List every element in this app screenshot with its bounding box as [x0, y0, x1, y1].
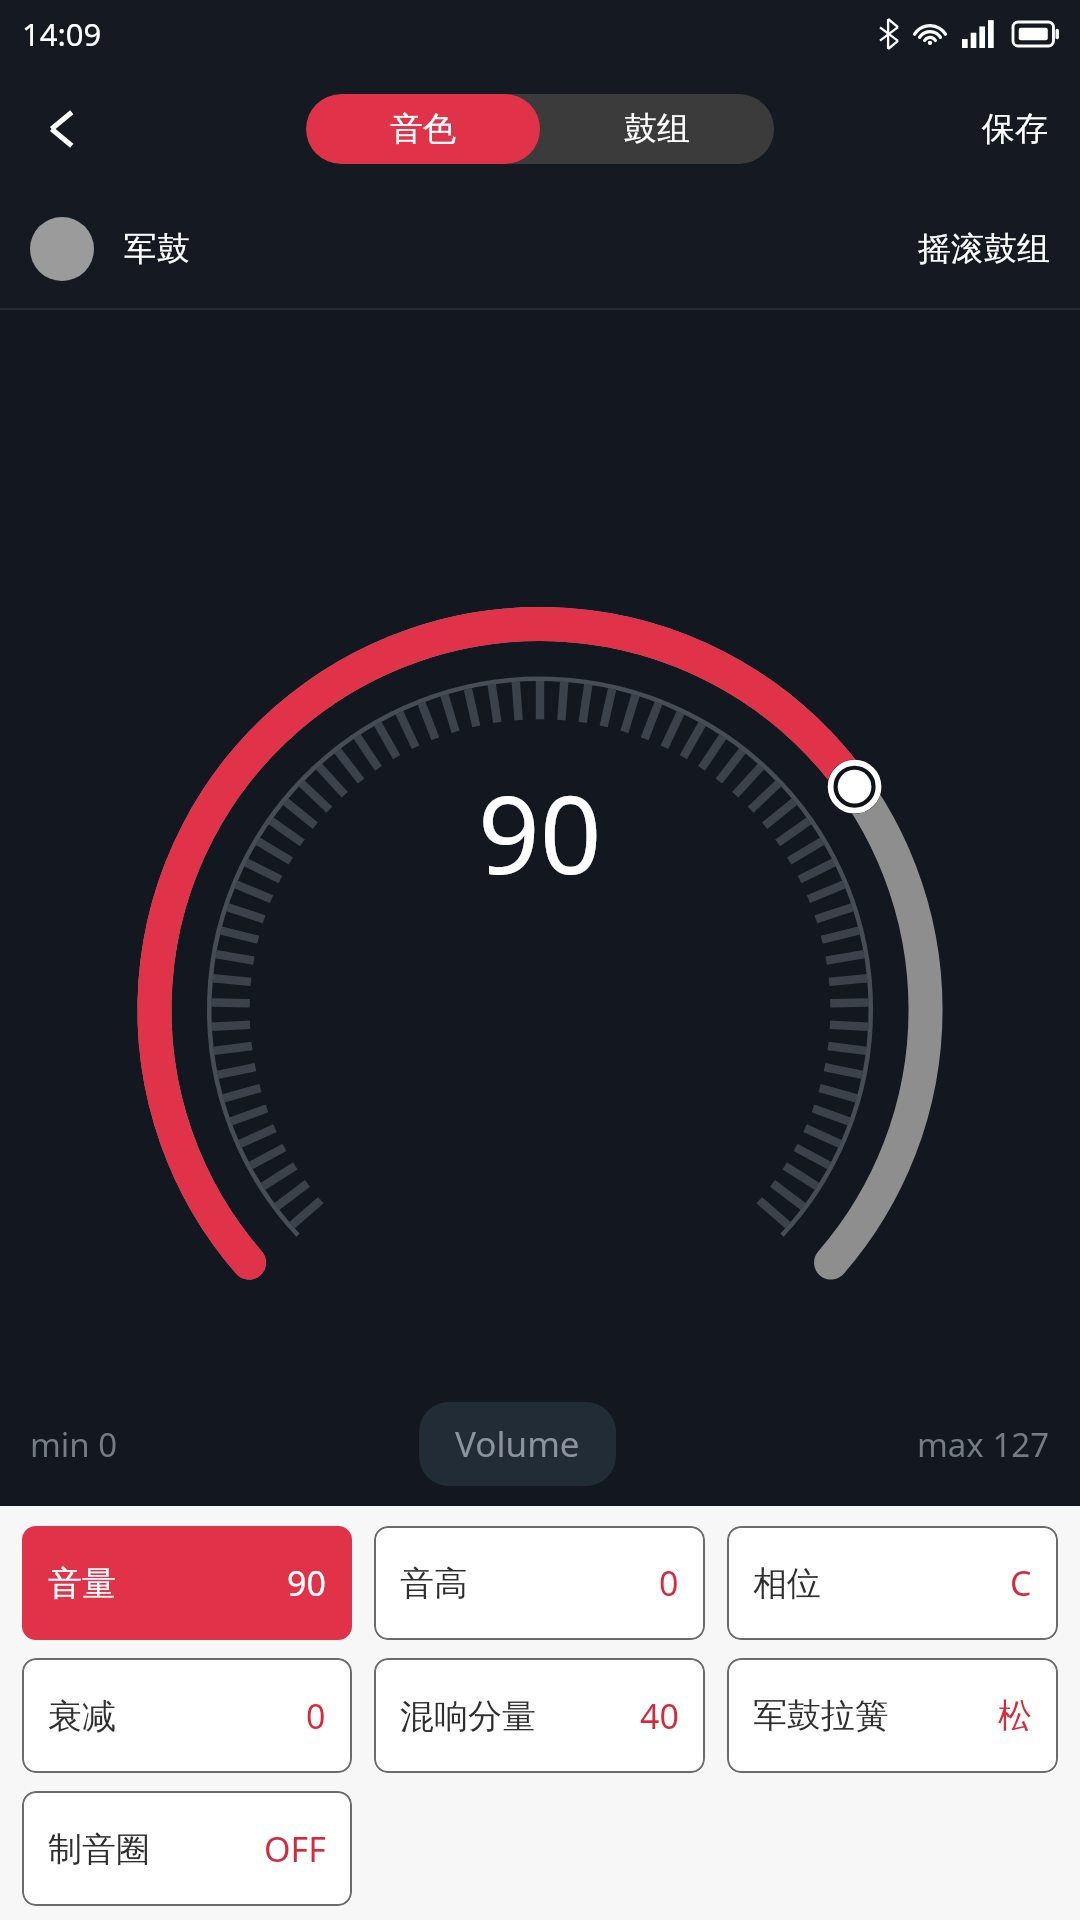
staticText: 0 [659, 1560, 679, 1606]
staticText: 音量 [48, 1562, 116, 1605]
button[interactable]: 音色 [306, 94, 540, 164]
button[interactable]: 音量 [22, 1526, 352, 1640]
button[interactable]: 相位 [727, 1526, 1058, 1640]
staticText: max 127 [917, 1422, 1050, 1467]
staticText: C [1010, 1560, 1032, 1606]
staticText: 保存 [982, 108, 1048, 150]
staticText: 音高 [400, 1562, 468, 1605]
staticText: 松 [998, 1694, 1032, 1737]
button[interactable]: 摇滚鼓组 [918, 228, 1050, 270]
button[interactable]: 鼓组 [540, 94, 774, 164]
staticText: 摇滚鼓组 [918, 228, 1050, 270]
button[interactable]: 保存 [968, 94, 1062, 164]
staticText: 音色 [390, 108, 456, 150]
staticText: 90 [287, 1560, 326, 1606]
button[interactable]: 音高 [374, 1526, 705, 1640]
button[interactable]: Back [20, 86, 106, 172]
staticText: 鼓组 [624, 108, 690, 150]
button[interactable]: 衰减 [22, 1658, 352, 1773]
staticText: 0 [306, 1693, 326, 1739]
staticText: 军鼓拉簧 [753, 1694, 889, 1737]
staticText: Volume [455, 1420, 580, 1468]
staticText: 衰减 [48, 1695, 116, 1738]
button[interactable]: 制音圈 [22, 1791, 352, 1906]
button[interactable]: Volume [419, 1402, 616, 1486]
staticText: 军鼓 [124, 228, 190, 270]
staticText: 14:09 [22, 13, 102, 55]
staticText: 40 [640, 1693, 679, 1739]
staticText: 制音圈 [48, 1828, 150, 1871]
staticText: OFF [264, 1826, 326, 1872]
button[interactable]: 军鼓 [30, 217, 190, 281]
staticText: 混响分量 [400, 1695, 536, 1738]
button[interactable]: 军鼓拉簧 [727, 1658, 1058, 1773]
staticText: 相位 [753, 1562, 821, 1605]
staticText: 90 [478, 759, 602, 906]
button[interactable]: 混响分量 [374, 1658, 705, 1773]
staticText: min 0 [30, 1422, 118, 1467]
